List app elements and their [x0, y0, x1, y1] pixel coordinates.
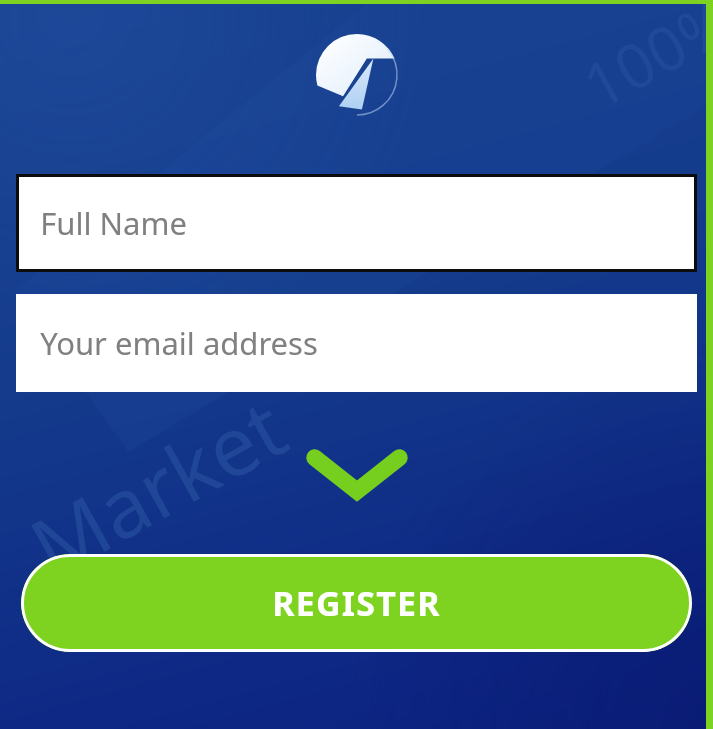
staticText: Your email address	[40, 322, 318, 364]
button[interactable]: REGISTER	[21, 554, 692, 652]
staticText: 100%	[567, 0, 713, 127]
button[interactable]: Your email address	[16, 294, 697, 392]
other: App logo	[316, 34, 398, 116]
staticText: REGISTER	[272, 580, 441, 626]
button[interactable]: Expand	[304, 444, 410, 506]
staticText: Market	[10, 371, 304, 601]
staticText: Full Name	[40, 202, 187, 244]
button[interactable]: Full Name	[16, 174, 697, 272]
